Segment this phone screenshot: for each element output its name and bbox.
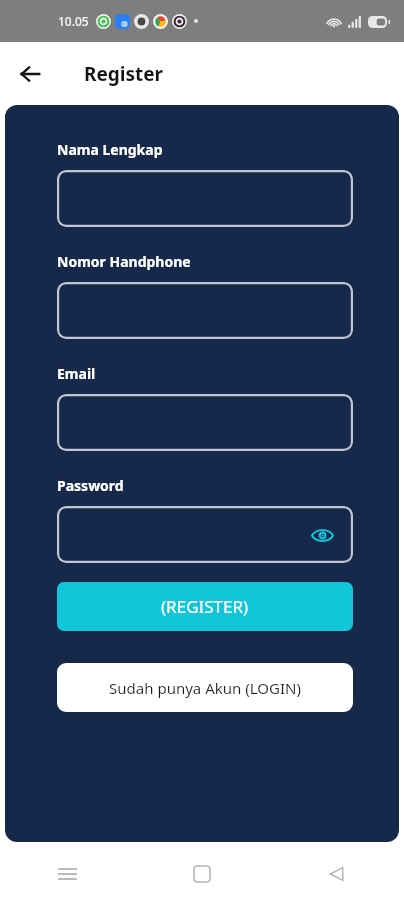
staticText: Register	[84, 61, 164, 87]
staticText: Nama Lengkap	[57, 140, 163, 159]
button[interactable]: Back	[12, 56, 48, 92]
staticText: (REGISTER)	[161, 595, 249, 618]
button[interactable]: (REGISTER)	[57, 582, 353, 631]
staticText: Email	[57, 364, 96, 383]
staticText: Nomor Handphone	[57, 252, 191, 271]
button[interactable]	[57, 170, 353, 227]
button[interactable]	[57, 394, 353, 451]
button[interactable]: Sudah punya Akun (LOGIN)	[57, 663, 353, 712]
button[interactable]: Back	[269, 847, 404, 900]
button[interactable]: Show password	[305, 518, 339, 552]
staticText: 10.05	[58, 13, 89, 29]
button[interactable]: Recent apps	[0, 847, 134, 900]
staticText: Password	[57, 476, 124, 495]
button[interactable]: Home	[134, 847, 269, 900]
staticText: Sudah punya Akun (LOGIN)	[109, 678, 301, 698]
button[interactable]	[57, 282, 353, 339]
button[interactable]: Show password	[57, 506, 353, 563]
